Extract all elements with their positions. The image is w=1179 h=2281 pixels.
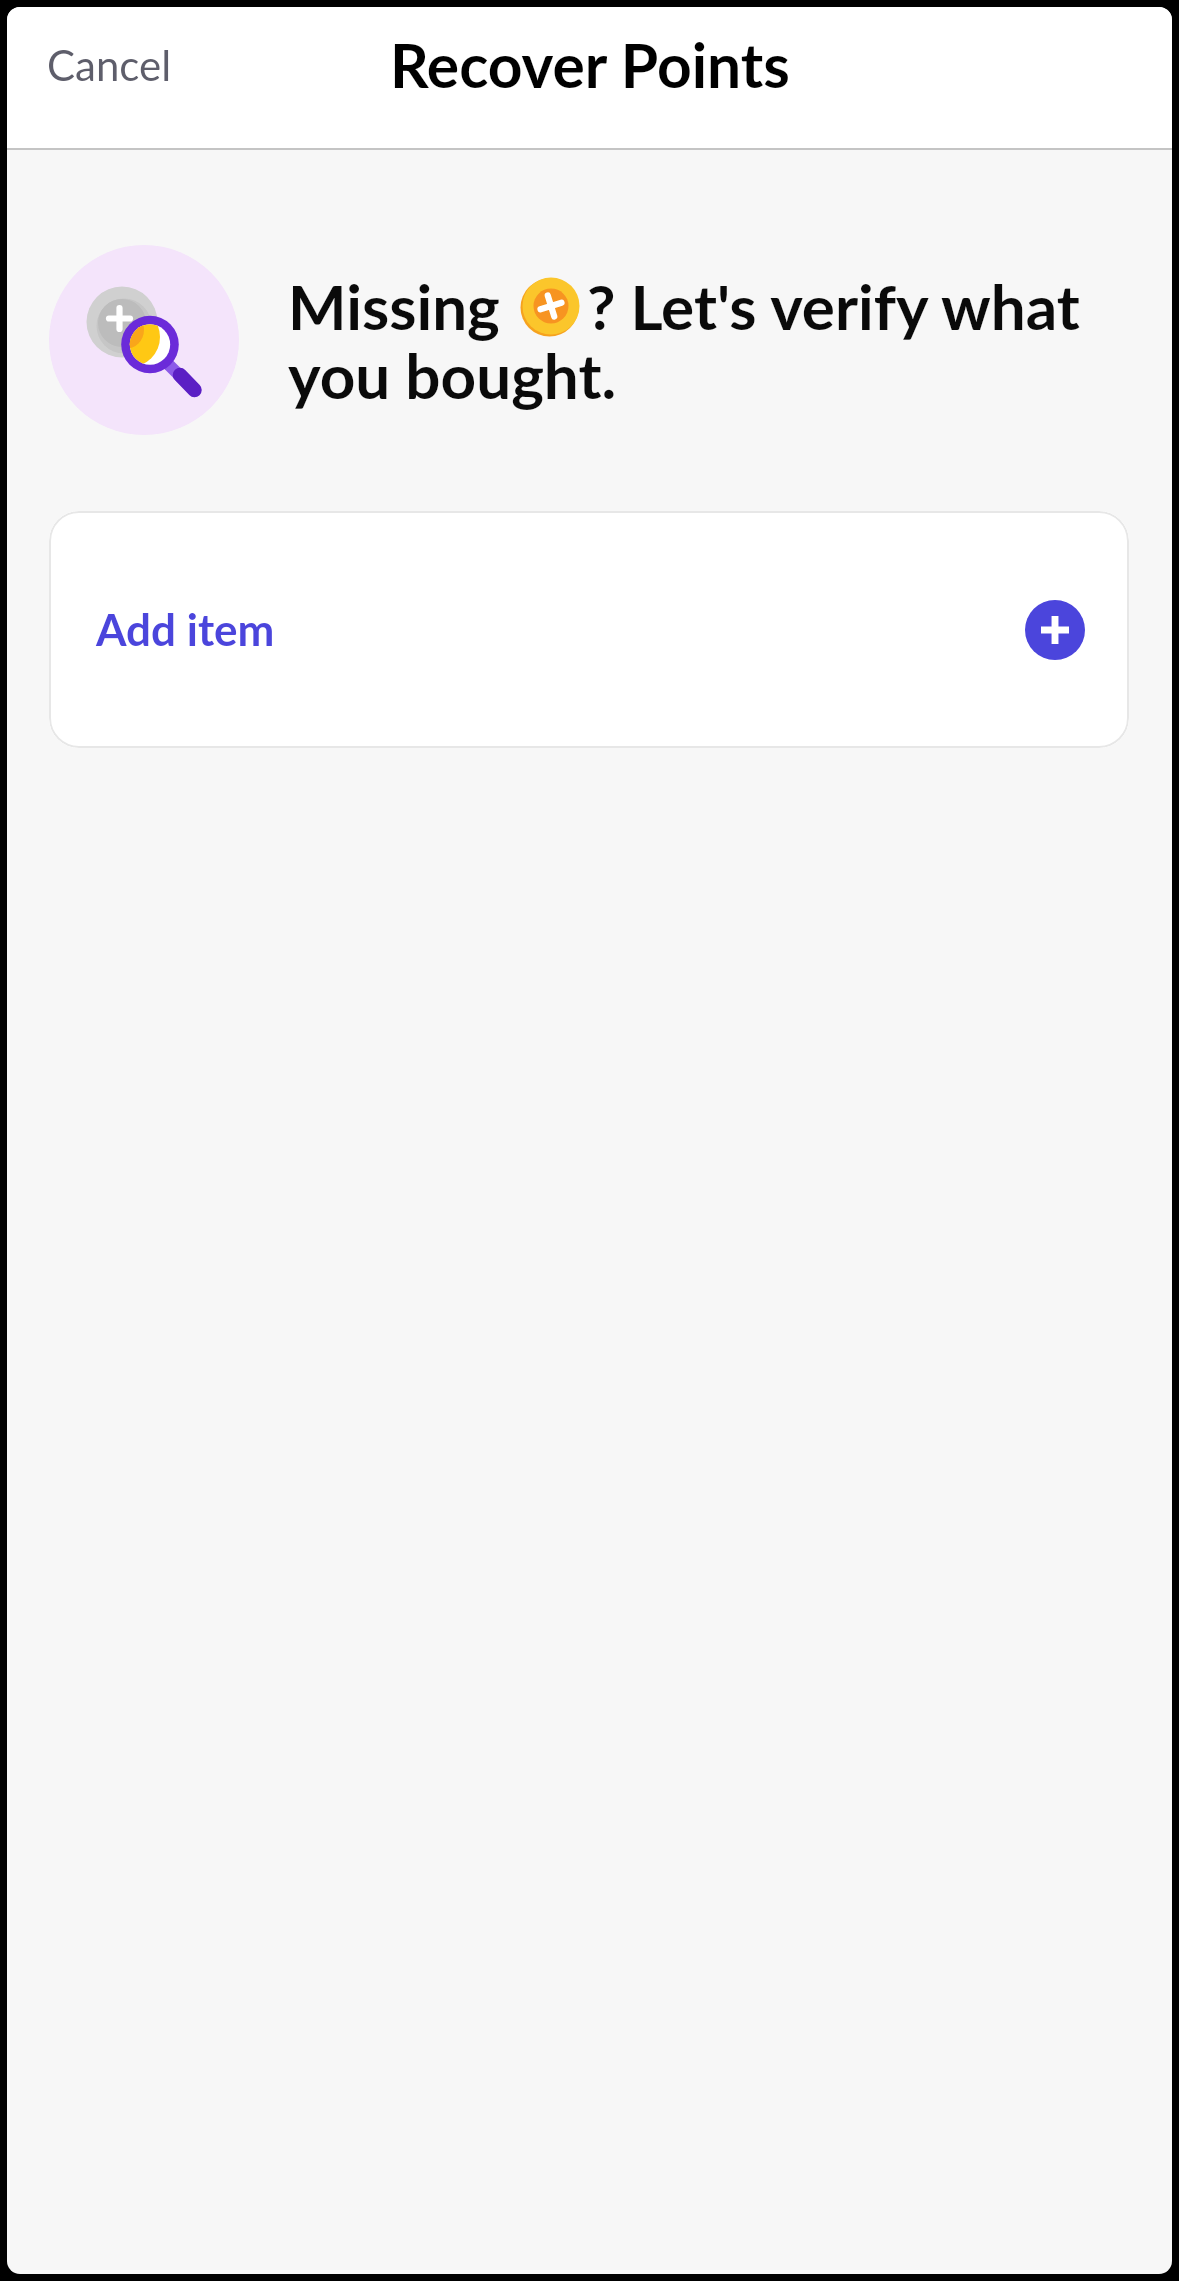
- button[interactable]: Add item: [49, 511, 1129, 748]
- button[interactable]: Add item: [1025, 600, 1085, 660]
- staticText: Recover Points: [390, 28, 790, 101]
- button[interactable]: Cancel: [25, 26, 194, 104]
- staticText: Add item: [96, 603, 275, 656]
- staticText: Cancel: [47, 40, 172, 90]
- staticText: Missing ? Let's verify what you bought.: [288, 269, 1100, 412]
